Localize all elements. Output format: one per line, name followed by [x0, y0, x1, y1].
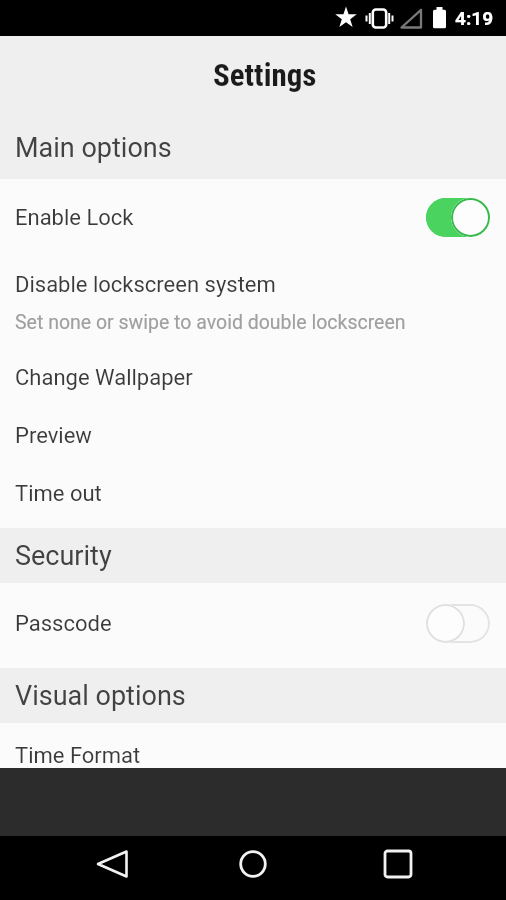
button[interactable]: Disable lockscreen system — [0, 256, 506, 349]
staticText: Time out — [15, 481, 102, 507]
button[interactable]: Time Format — [0, 723, 506, 768]
staticText: Main options — [15, 132, 172, 164]
staticText: Security — [15, 540, 112, 572]
button[interactable]: Passcode — [0, 583, 506, 664]
staticText: Passcode — [15, 611, 112, 637]
staticText: Visual options — [15, 680, 186, 712]
button[interactable]: Preview — [0, 407, 506, 465]
button[interactable]: Time out — [0, 465, 506, 523]
staticText: Change Wallpaper — [15, 365, 193, 391]
staticText: 4:19 — [455, 7, 494, 29]
button[interactable]: Enable Lock — [0, 179, 506, 256]
staticText: Disable lockscreen system — [15, 272, 276, 298]
staticText: Preview — [15, 423, 92, 449]
staticText: Settings — [213, 57, 317, 93]
button[interactable] — [426, 604, 490, 643]
button[interactable] — [337, 836, 506, 900]
staticText: Set none or swipe to avoid double locksc… — [15, 311, 406, 334]
button[interactable]: Change Wallpaper — [0, 349, 506, 407]
button[interactable] — [426, 198, 490, 237]
button[interactable] — [0, 836, 168, 900]
staticText: Enable Lock — [15, 205, 134, 231]
staticText: Time Format — [15, 743, 141, 768]
button[interactable] — [168, 836, 337, 900]
